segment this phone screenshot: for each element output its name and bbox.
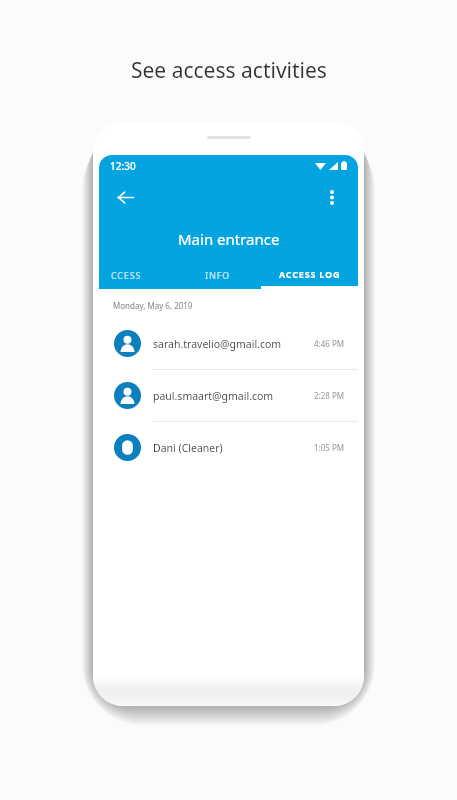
staticText: Monday, May 6, 2019 (113, 300, 193, 311)
staticText: See access activities (131, 56, 327, 85)
button[interactable]: INFO (174, 261, 261, 289)
staticText: Main entrance (178, 229, 280, 249)
button[interactable]: paul.smaart@gmail.com (99, 370, 358, 422)
staticText: paul.smaart@gmail.com (153, 389, 314, 403)
staticText: 2:28 PM (314, 390, 345, 401)
button[interactable]: More options (316, 181, 348, 213)
staticText: INFO (205, 269, 231, 281)
staticText: sarah.travelio@gmail.com (153, 337, 314, 351)
staticText: Dani (Cleaner) (153, 441, 314, 455)
button[interactable]: sarah.travelio@gmail.com (99, 318, 358, 370)
button[interactable]: ACCESS LOG (261, 261, 358, 289)
staticText: CCESS (111, 269, 142, 281)
button[interactable]: Dani (Cleaner) (99, 422, 358, 473)
button[interactable]: Back (109, 181, 141, 213)
staticText: 1:05 PM (314, 442, 345, 453)
staticText: 12:30 (110, 159, 136, 173)
staticText: 4:46 PM (314, 338, 345, 349)
staticText: ACCESS LOG (279, 268, 341, 280)
button[interactable]: CCESS (99, 261, 174, 289)
